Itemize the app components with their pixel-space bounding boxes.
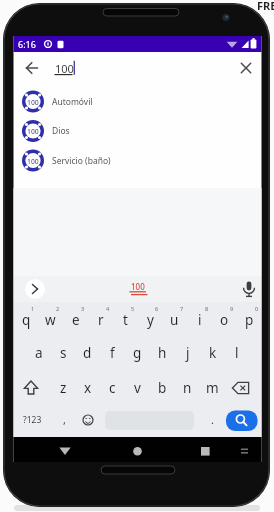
button[interactable]: h	[150, 338, 175, 368]
staticText: 100	[55, 61, 74, 76]
button[interactable]: .	[202, 405, 222, 433]
staticText: n	[183, 379, 192, 397]
button[interactable]: c	[100, 373, 125, 403]
staticText: o	[220, 311, 229, 329]
button[interactable]	[24, 278, 46, 300]
button[interactable]: f	[100, 338, 125, 368]
button[interactable]	[192, 442, 218, 461]
button[interactable]: x	[75, 373, 100, 403]
staticText: 3	[81, 305, 85, 312]
button[interactable]	[230, 376, 254, 400]
button[interactable]	[238, 278, 260, 300]
button[interactable]: j	[175, 338, 200, 368]
button[interactable]: ?123	[14, 406, 50, 434]
staticText: j	[186, 344, 190, 362]
button[interactable]: m	[200, 373, 225, 403]
button[interactable]	[20, 376, 44, 400]
staticText: w	[45, 311, 56, 329]
staticText: 0	[255, 305, 259, 312]
staticText: 6:16	[18, 38, 36, 50]
staticText: FRE	[257, 0, 274, 13]
button[interactable]: s	[51, 338, 76, 368]
button[interactable]: e	[63, 305, 88, 335]
staticText: 7	[180, 305, 184, 312]
staticText: d	[83, 344, 92, 362]
button[interactable]: ,	[54, 405, 74, 433]
button[interactable]: z	[51, 373, 76, 403]
button[interactable]: o	[212, 305, 237, 335]
staticText: ,	[63, 412, 66, 427]
staticText: 2	[56, 305, 60, 312]
staticText: b	[158, 379, 167, 397]
button[interactable]	[14, 117, 262, 146]
staticText: Servicio (baño)	[52, 155, 111, 167]
staticText: x	[84, 379, 92, 397]
staticText: t	[123, 311, 128, 329]
button[interactable]: l	[224, 338, 249, 368]
staticText: f	[110, 344, 115, 362]
staticText: y	[147, 311, 154, 329]
button[interactable]	[226, 408, 258, 432]
button[interactable]: u	[162, 305, 187, 335]
staticText: Automóvil	[52, 96, 93, 108]
staticText: l	[235, 344, 239, 362]
staticText: Dios	[52, 125, 70, 137]
staticText: g	[133, 344, 142, 362]
staticText: 5	[131, 305, 135, 312]
staticText: k	[209, 344, 217, 362]
button[interactable]: w	[38, 305, 63, 335]
button[interactable]: q	[14, 305, 39, 335]
button[interactable]	[78, 408, 98, 432]
staticText: 100	[27, 157, 39, 166]
staticText: i	[198, 311, 202, 329]
staticText: z	[60, 379, 67, 397]
staticText: h	[158, 344, 167, 362]
button[interactable]: i	[187, 305, 212, 335]
staticText: c	[109, 379, 116, 397]
button[interactable]	[105, 408, 194, 432]
button[interactable]: y	[138, 305, 163, 335]
staticText: .	[211, 412, 214, 427]
button[interactable]	[52, 442, 78, 461]
staticText: v	[134, 379, 141, 397]
button[interactable]	[14, 87, 262, 116]
button[interactable]: a	[26, 338, 51, 368]
staticText: p	[245, 311, 254, 329]
button[interactable]: r	[88, 305, 113, 335]
button[interactable]	[20, 57, 42, 79]
staticText: 4	[106, 305, 110, 312]
staticText: a	[35, 344, 43, 362]
button[interactable]: d	[75, 338, 100, 368]
staticText: u	[170, 311, 179, 329]
button[interactable]	[235, 57, 257, 79]
staticText: e	[72, 311, 80, 329]
staticText: 1	[31, 305, 35, 312]
button[interactable]: k	[200, 338, 225, 368]
button[interactable]: b	[150, 373, 175, 403]
staticText: r	[98, 311, 104, 329]
staticText: m	[206, 379, 219, 397]
staticText: ?123	[23, 414, 42, 426]
staticText: 8	[205, 305, 209, 312]
staticText: 100	[131, 281, 145, 292]
button[interactable]: g	[125, 338, 150, 368]
button[interactable]	[14, 146, 262, 175]
button[interactable]	[124, 442, 150, 461]
staticText: 6	[155, 305, 159, 312]
staticText: 100	[27, 98, 39, 107]
staticText: 9	[230, 305, 234, 312]
button[interactable]: n	[175, 373, 200, 403]
button[interactable]: t	[113, 305, 138, 335]
staticText: q	[22, 311, 31, 329]
staticText: 100	[27, 127, 39, 136]
staticText: s	[60, 344, 67, 362]
button[interactable]: v	[125, 373, 150, 403]
button[interactable]	[120, 277, 155, 301]
button[interactable]: p	[237, 305, 262, 335]
